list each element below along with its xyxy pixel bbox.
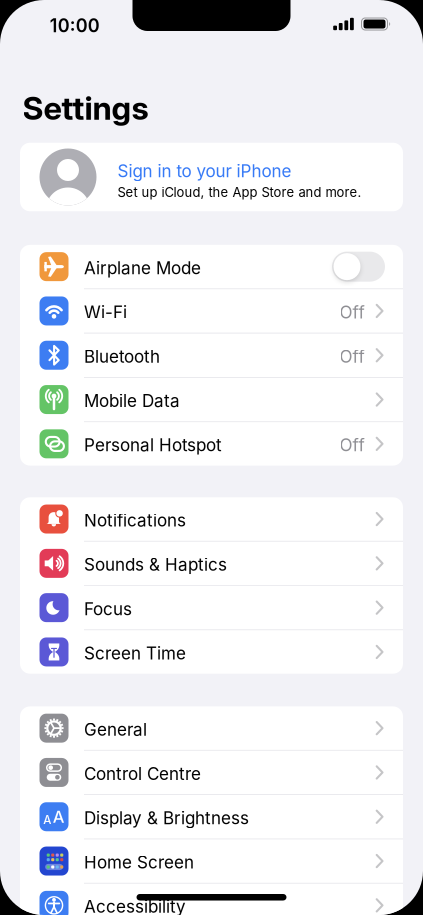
button[interactable]: Bluetooth xyxy=(20,333,403,377)
staticText: Wi-Fi xyxy=(84,302,127,323)
button[interactable]: Airplane Mode xyxy=(20,245,403,288)
staticText: Accessibility xyxy=(84,896,186,915)
button[interactable]: Notifications xyxy=(20,497,403,541)
staticText: Bluetooth xyxy=(84,346,160,367)
staticText: Mobile Data xyxy=(84,391,180,411)
staticText: 10:00 xyxy=(50,15,100,37)
staticText: A xyxy=(53,807,65,827)
staticText: Home Screen xyxy=(84,852,194,873)
button[interactable]: Screen Time xyxy=(20,630,403,674)
staticText: General xyxy=(84,719,147,740)
staticText: Airplane Mode xyxy=(84,258,201,278)
staticText: A xyxy=(43,813,51,827)
staticText: Control Centre xyxy=(84,763,201,784)
staticText: Settings xyxy=(22,89,148,127)
button[interactable]: Sign in to your iPhone xyxy=(20,143,403,211)
button[interactable]: Home Screen xyxy=(20,839,403,883)
button[interactable]: Accessibility xyxy=(20,884,403,915)
button[interactable]: General xyxy=(20,706,403,750)
button[interactable]: Sounds & Haptics xyxy=(20,542,403,585)
staticText: Off xyxy=(339,302,364,323)
staticText: Personal Hotspot xyxy=(84,435,222,455)
staticText: Display & Brightness xyxy=(84,808,249,828)
button[interactable]: Personal Hotspot xyxy=(20,422,403,466)
staticText: Notifications xyxy=(84,510,186,531)
button[interactable]: Control Centre xyxy=(20,751,403,794)
button[interactable]: Wi-Fi xyxy=(20,289,403,333)
staticText: Sounds & Haptics xyxy=(84,554,227,575)
staticText: Set up iCloud, the App Store and more. xyxy=(117,184,361,200)
button[interactable]: Mobile Data xyxy=(20,378,403,421)
staticText: Screen Time xyxy=(84,643,186,664)
staticText: Off xyxy=(339,346,364,367)
button[interactable]: A xyxy=(20,795,403,838)
staticText: Focus xyxy=(84,599,132,619)
staticText: Off xyxy=(339,435,364,455)
staticText: Sign in to your iPhone xyxy=(117,161,291,181)
button[interactable]: Focus xyxy=(20,586,403,629)
